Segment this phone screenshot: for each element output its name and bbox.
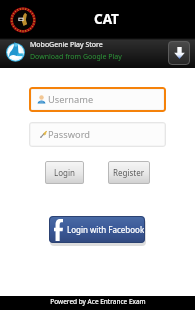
staticText: MoboGenie Play Store xyxy=(30,40,103,50)
button[interactable]: MoboGenie Play Store xyxy=(0,38,195,68)
staticText: Powered by Ace Entrance Exam xyxy=(50,297,146,306)
staticText: Login with Facebook xyxy=(67,224,145,235)
staticText: Username xyxy=(48,93,94,106)
button[interactable]: Login xyxy=(45,161,84,184)
staticText: Register xyxy=(113,167,145,178)
staticText: Login xyxy=(54,167,75,178)
button[interactable]: Password xyxy=(29,122,166,147)
staticText: Password xyxy=(48,128,91,141)
button[interactable]: Register xyxy=(108,161,150,184)
staticText: CAT xyxy=(94,10,119,28)
button[interactable]: Login with Facebook xyxy=(49,216,145,243)
staticText: Download from Google Play xyxy=(30,52,122,62)
button[interactable]: Username xyxy=(29,87,166,112)
button[interactable]: Download xyxy=(168,41,190,65)
